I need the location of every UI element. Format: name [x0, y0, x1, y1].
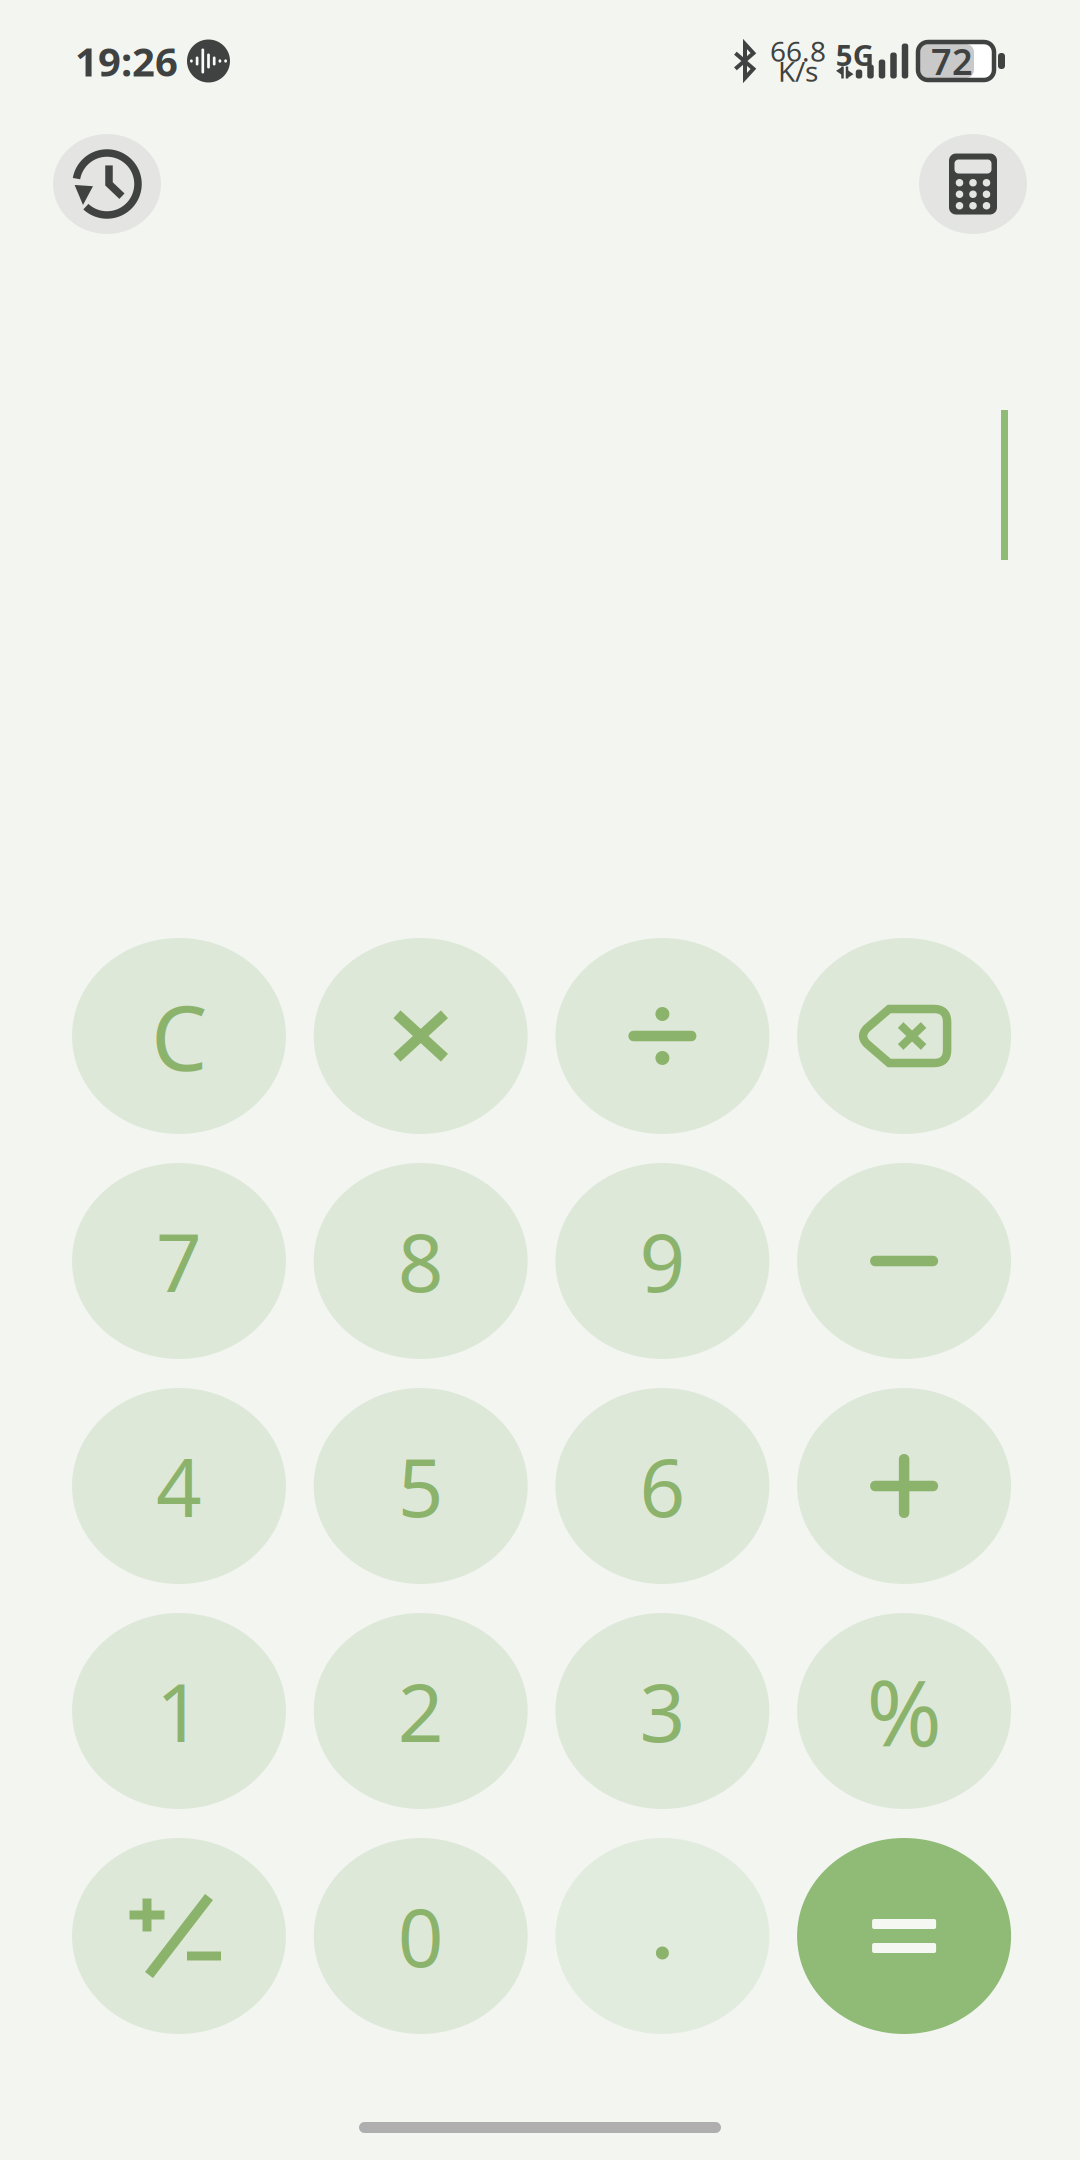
staticText: 1	[156, 1658, 202, 1764]
button[interactable]: Scientific calculator	[919, 134, 1027, 234]
button[interactable]: Toggle sign	[72, 1838, 286, 2034]
staticText: 19:26	[75, 34, 178, 87]
button[interactable]: Equals	[797, 1838, 1011, 2034]
button[interactable]	[555, 1163, 769, 1359]
button[interactable]: Divide	[555, 938, 769, 1134]
button[interactable]: Backspace	[797, 938, 1011, 1134]
staticText: 7	[156, 1208, 202, 1314]
button[interactable]: Clear	[72, 938, 286, 1134]
staticText: 66.8	[770, 32, 826, 70]
button[interactable]: Plus	[797, 1388, 1011, 1584]
button[interactable]: History	[53, 134, 161, 234]
staticText: 5G	[836, 35, 874, 74]
staticText: 72	[931, 37, 973, 85]
button[interactable]: Percent	[797, 1613, 1011, 1809]
staticText: 9	[639, 1208, 685, 1314]
staticText: 8	[398, 1208, 444, 1314]
staticText: 4	[156, 1433, 202, 1539]
button[interactable]	[314, 1163, 528, 1359]
button[interactable]	[555, 1613, 769, 1809]
button[interactable]	[314, 1613, 528, 1809]
button[interactable]: Multiply	[314, 938, 528, 1134]
staticText: 2	[398, 1658, 444, 1764]
staticText: %	[867, 1651, 942, 1771]
staticText: K/s	[778, 52, 818, 90]
button[interactable]	[314, 1838, 528, 2034]
button[interactable]	[72, 1163, 286, 1359]
button[interactable]: Minus	[797, 1163, 1011, 1359]
staticText: 5	[398, 1433, 444, 1539]
button[interactable]: Decimal point	[555, 1838, 769, 2034]
staticText: 6	[639, 1433, 685, 1539]
staticText: C	[151, 977, 207, 1095]
button[interactable]	[72, 1613, 286, 1809]
button[interactable]	[314, 1388, 528, 1584]
staticText: 0	[398, 1883, 444, 1989]
staticText: 3	[639, 1658, 685, 1764]
button[interactable]	[72, 1388, 286, 1584]
button[interactable]	[555, 1388, 769, 1584]
